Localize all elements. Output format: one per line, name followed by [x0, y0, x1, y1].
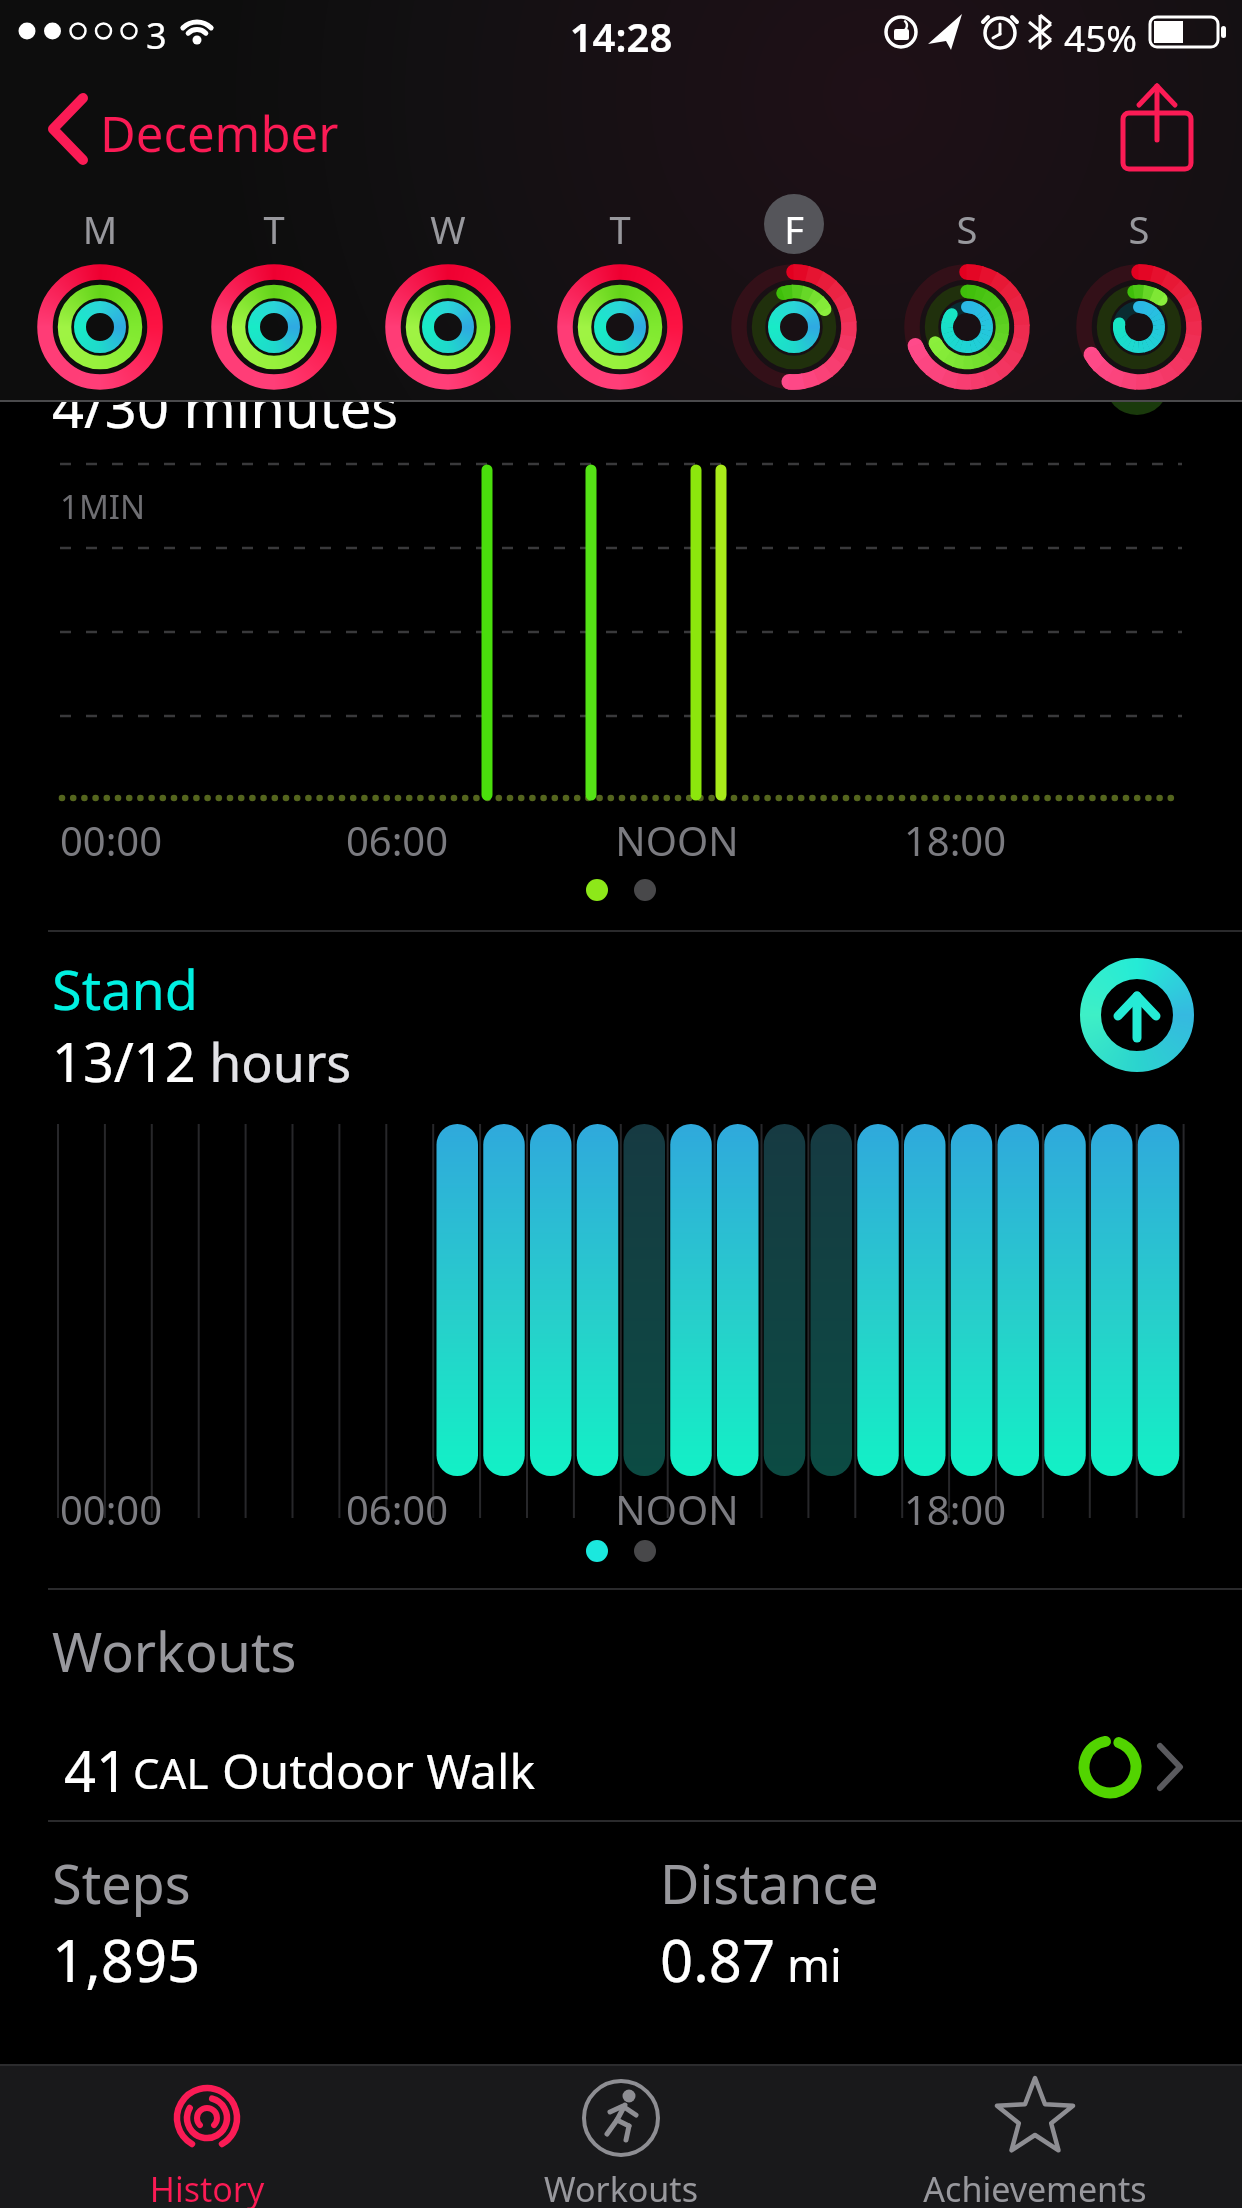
- staticText: T: [234, 203, 314, 255]
- staticText: 00:00: [0, 1482, 241, 1536]
- staticText: 14:28: [491, 9, 751, 63]
- staticText: 0.87 mi: [660, 1920, 842, 1999]
- staticText: Workouts: [52, 1614, 297, 1688]
- button[interactable]: [1110, 80, 1210, 180]
- staticText: W: [408, 203, 488, 255]
- staticText: Stand: [52, 952, 199, 1026]
- button[interactable]: [908, 2064, 1162, 2208]
- staticText: Distance: [660, 1846, 879, 1920]
- staticText: S: [1099, 203, 1179, 255]
- staticText: 00:00: [0, 813, 241, 867]
- staticText: 06:00: [267, 1482, 527, 1536]
- staticText: 13/12 hours: [52, 1024, 352, 1098]
- staticText: Achievements: [905, 2166, 1165, 2208]
- staticText: NOON: [547, 1482, 807, 1536]
- staticText: CAL: [133, 1744, 209, 1801]
- staticText: 41: [64, 1732, 129, 1808]
- button[interactable]: [494, 2064, 748, 2208]
- staticText: 18:00: [825, 1482, 1085, 1536]
- staticText: NOON: [547, 813, 807, 867]
- staticText: S: [927, 203, 1007, 255]
- staticText: 45%: [1064, 12, 1138, 62]
- staticText: Workouts: [491, 2166, 751, 2208]
- staticText: T: [580, 203, 660, 255]
- staticText: Steps: [52, 1846, 191, 1920]
- staticText: History: [77, 2166, 337, 2208]
- staticText: 06:00: [267, 813, 527, 867]
- staticText: F: [754, 203, 834, 255]
- button[interactable]: 41: [0, 1722, 1242, 1818]
- staticText: Outdoor Walk: [222, 1738, 536, 1803]
- staticText: 18:00: [825, 813, 1085, 867]
- button[interactable]: [80, 2064, 334, 2208]
- button[interactable]: [1080, 958, 1194, 1072]
- staticText: 1MIN: [60, 484, 146, 529]
- staticText: 3: [146, 11, 167, 60]
- button[interactable]: [40, 90, 340, 170]
- staticText: December: [100, 100, 339, 167]
- staticText: M: [60, 203, 140, 255]
- staticText: 4/30 minutes: [52, 368, 399, 444]
- staticText: 1,895: [52, 1920, 201, 1999]
